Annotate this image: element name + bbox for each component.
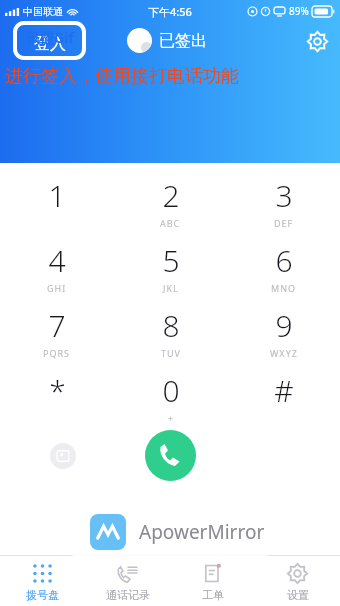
button[interactable]: 工单 bbox=[170, 556, 255, 606]
staticText: 4 bbox=[48, 240, 66, 281]
staticText: 拨号盘 bbox=[26, 588, 59, 602]
staticText: 9 bbox=[275, 305, 293, 346]
staticText: WXYZ bbox=[270, 347, 298, 359]
button[interactable]: 3 bbox=[227, 175, 340, 240]
staticText: 设置 bbox=[287, 588, 309, 602]
staticText: 3 bbox=[275, 175, 293, 216]
staticText: ABC bbox=[160, 217, 181, 229]
button[interactable]: 拨号盘 bbox=[0, 556, 85, 606]
staticText: GHI bbox=[47, 282, 67, 294]
staticText: DEF bbox=[274, 217, 294, 229]
button[interactable]: 4 bbox=[0, 240, 114, 305]
staticText: 中国联通 bbox=[23, 5, 63, 18]
button[interactable]: 设置 bbox=[255, 556, 340, 606]
staticText: 7 bbox=[48, 305, 66, 346]
staticText: 2 bbox=[162, 175, 180, 216]
staticText: 登入 bbox=[34, 34, 66, 54]
staticText: JKL bbox=[163, 282, 179, 294]
staticText: PQRS bbox=[43, 347, 71, 359]
staticText: 进行签入，使用接打电话功能 bbox=[5, 65, 239, 88]
staticText: 6 bbox=[275, 240, 293, 281]
button[interactable]: 9 bbox=[227, 305, 340, 370]
staticText: ApowerMirror bbox=[139, 519, 265, 545]
staticText: 已签出 bbox=[159, 31, 207, 51]
staticText: + bbox=[168, 412, 175, 424]
button[interactable]: 通话记录 bbox=[85, 556, 170, 606]
staticText: 8 bbox=[162, 305, 180, 346]
button[interactable]: 7 bbox=[0, 305, 114, 370]
staticText: TUV bbox=[161, 347, 181, 359]
staticText: 1 bbox=[48, 175, 66, 216]
button[interactable]: 1 bbox=[0, 175, 114, 240]
button[interactable]: 2 bbox=[114, 175, 227, 240]
staticText: 下午4:56 bbox=[148, 4, 192, 19]
button[interactable]: # bbox=[227, 370, 340, 435]
staticText: 工单 bbox=[202, 588, 224, 602]
staticText: MNO bbox=[271, 282, 297, 294]
staticText: 通话记录 bbox=[106, 588, 150, 602]
staticText: 89% bbox=[289, 4, 309, 18]
button[interactable]: 0 bbox=[114, 370, 227, 435]
button[interactable]: * bbox=[0, 370, 114, 435]
button[interactable]: Settings bbox=[302, 26, 332, 56]
staticText: # bbox=[274, 370, 294, 411]
staticText: * bbox=[49, 370, 66, 411]
button[interactable]: Call bbox=[145, 430, 196, 481]
staticText: 讯捷Gif bbox=[26, 28, 74, 47]
button[interactable]: Contacts bbox=[48, 441, 78, 471]
button[interactable]: 8 bbox=[114, 305, 227, 370]
button[interactable]: 6 bbox=[227, 240, 340, 305]
staticText: 5 bbox=[162, 240, 180, 281]
button[interactable]: 5 bbox=[114, 240, 227, 305]
staticText: 0 bbox=[162, 370, 180, 411]
button[interactable]: 已签出 bbox=[127, 28, 207, 53]
